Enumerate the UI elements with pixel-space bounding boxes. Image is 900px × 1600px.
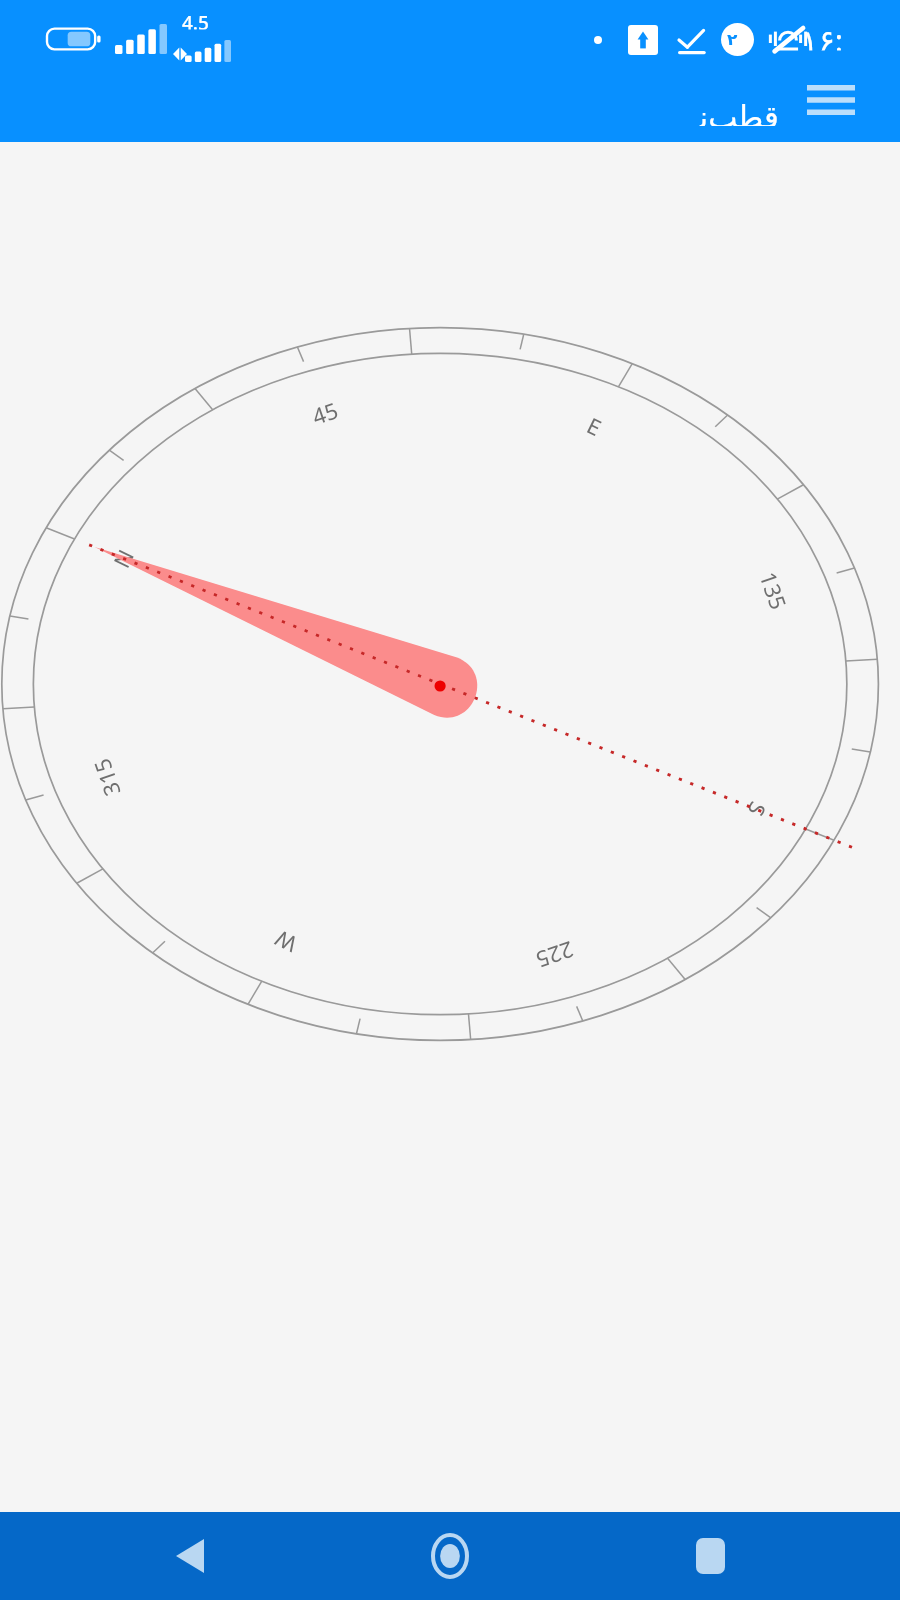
other: Upload <box>628 25 658 55</box>
button[interactable]: Menu <box>796 70 866 130</box>
button[interactable]: Home <box>410 1516 490 1596</box>
button[interactable]: Back <box>150 1516 230 1596</box>
button[interactable]: Recents <box>670 1516 750 1596</box>
